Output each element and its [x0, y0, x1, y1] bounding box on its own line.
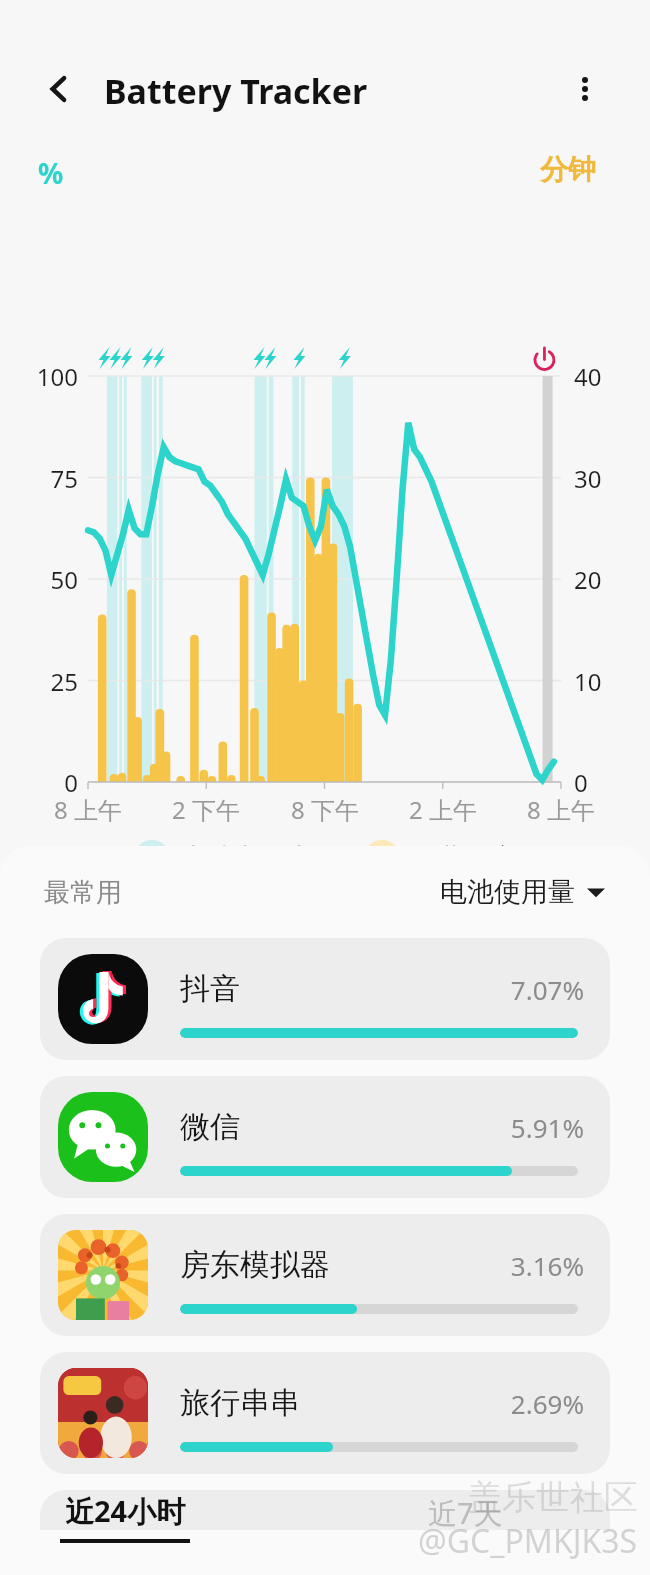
staticText: 微信 [180, 1108, 240, 1146]
staticText: % [38, 154, 64, 192]
staticText: 3.16% [40, 1248, 584, 1283]
staticText: 7.07% [40, 972, 584, 1007]
staticText: 100 [14, 360, 78, 393]
staticText: 40 [574, 360, 602, 393]
button[interactable]: 近7天 [428, 1493, 503, 1533]
staticText: 电池使用量 [440, 875, 575, 909]
button[interactable]: More options [558, 62, 612, 116]
staticText: 2 上午 [385, 793, 501, 826]
staticText: 旅行串串 [180, 1384, 300, 1422]
staticText: @GC_PMKJK3S [418, 1519, 638, 1563]
staticText: 2 下午 [148, 793, 264, 826]
button[interactable]: 旅行串串 [40, 1352, 610, 1474]
button[interactable]: 抖音 [40, 938, 610, 1060]
staticText: 8 下午 [267, 793, 383, 826]
staticText: 50 [14, 563, 78, 596]
staticText: 近7天 [428, 1493, 503, 1533]
staticText: 8 上午 [30, 793, 146, 826]
staticText: 盖乐世社区 [468, 1476, 638, 1519]
staticText: 10 [574, 665, 602, 698]
staticText: 8 上午 [503, 793, 619, 826]
staticText: 2.69% [40, 1386, 584, 1421]
staticText: 分钟 [540, 152, 596, 187]
staticText: 0 [574, 766, 588, 799]
button[interactable]: 微信 [40, 1076, 610, 1198]
staticText: 最常用 [44, 876, 122, 909]
staticText: Battery Tracker [104, 68, 368, 114]
button[interactable]: 电池使用量 [440, 875, 606, 909]
staticText: 75 [14, 462, 78, 495]
button[interactable]: Back [32, 62, 86, 116]
staticText: 25 [14, 665, 78, 698]
staticText: 近24小时 [65, 1491, 186, 1531]
button[interactable]: 近24小时 [60, 1491, 190, 1543]
button[interactable] [40, 1490, 610, 1530]
staticText: 0 [14, 766, 78, 799]
staticText: 房东模拟器 [180, 1246, 330, 1284]
staticText: 5.91% [40, 1110, 584, 1145]
staticText: 30 [574, 462, 602, 495]
staticText: 20 [574, 563, 602, 596]
staticText: 屏幕开启 [412, 842, 516, 875]
button[interactable]: 房东模拟器 [40, 1214, 610, 1336]
staticText: 抖音 [180, 970, 240, 1008]
